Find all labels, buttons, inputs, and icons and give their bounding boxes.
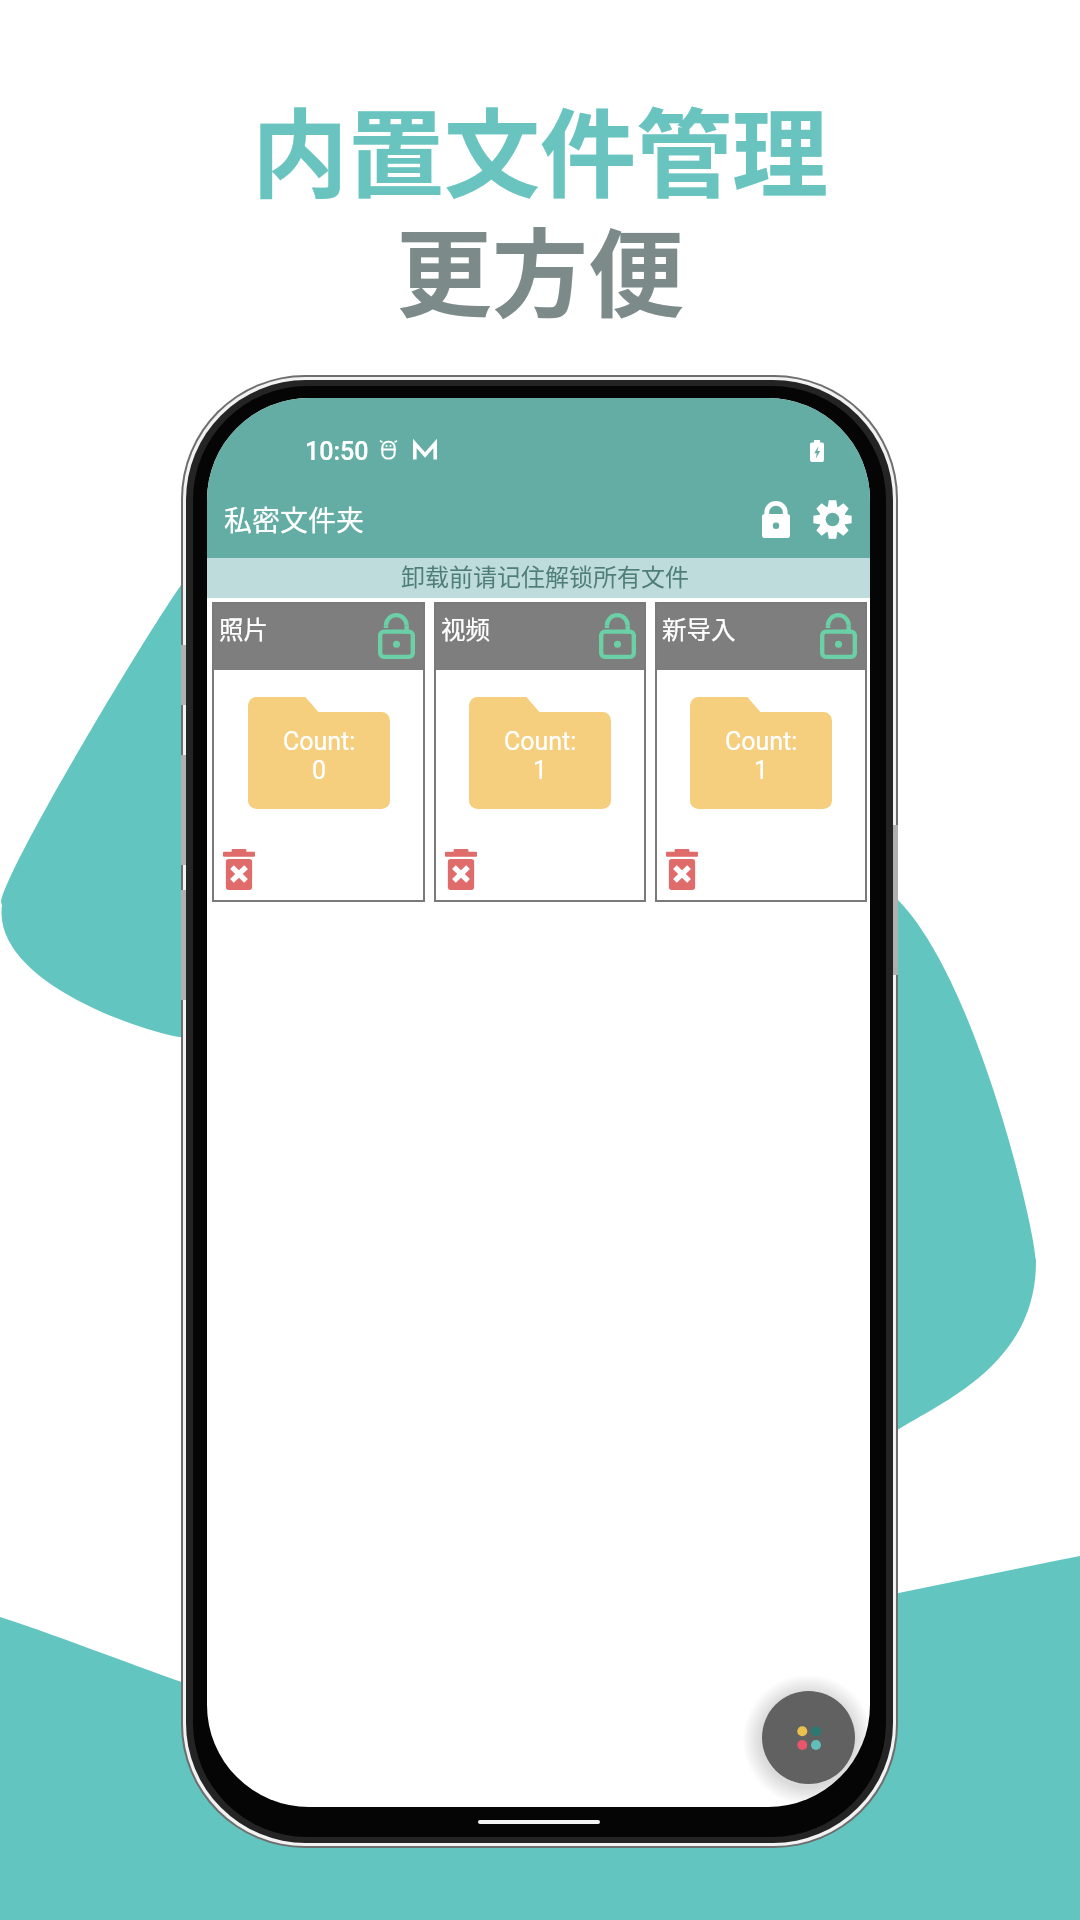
staticText: Count: [283, 727, 356, 756]
staticText: 1 [754, 756, 769, 785]
button[interactable]: Unlock [594, 613, 640, 659]
staticText: 新导入 [662, 611, 736, 646]
staticText: 视频 [441, 611, 490, 646]
button[interactable]: Unlock [373, 613, 419, 659]
staticText: 1 [533, 756, 548, 785]
staticText: 卸载前请记住解锁所有文件 [401, 558, 689, 593]
button[interactable]: Delete [216, 846, 262, 892]
button[interactable]: Delete [438, 846, 484, 892]
staticText: 内置文件管理 [252, 78, 828, 217]
button[interactable]: 照片 [212, 602, 425, 902]
button[interactable]: Settings [804, 491, 860, 547]
staticText: 10:50 [305, 437, 369, 466]
button[interactable]: 新导入 [655, 602, 867, 902]
staticText: 0 [312, 756, 327, 785]
staticText: 更方便 [396, 198, 684, 337]
button[interactable]: Assistant [762, 1691, 855, 1784]
staticText: 私密文件夹 [224, 499, 365, 540]
staticText: Count: [725, 727, 798, 756]
button[interactable]: Unlock [815, 613, 861, 659]
button[interactable]: 视频 [434, 602, 646, 902]
button[interactable]: Delete [659, 846, 705, 892]
staticText: Count: [504, 727, 577, 756]
staticText: 照片 [219, 611, 268, 646]
button[interactable]: Lock [748, 491, 804, 547]
